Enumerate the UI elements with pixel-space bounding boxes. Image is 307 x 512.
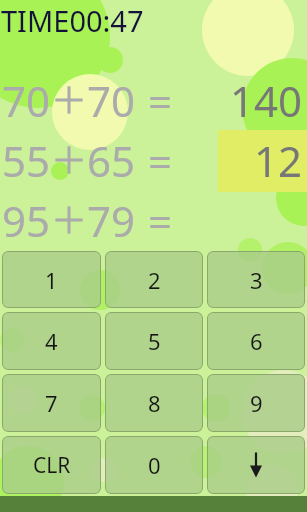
staticText: =	[148, 132, 173, 189]
staticText: 12	[254, 132, 303, 189]
button[interactable]: 6	[207, 312, 305, 370]
staticText: TIME00:47	[1, 1, 144, 40]
staticText: 55	[2, 132, 51, 189]
staticText: 140	[230, 72, 303, 129]
staticText: 7	[45, 388, 58, 418]
staticText: 70	[2, 72, 51, 129]
staticText: =	[148, 72, 173, 129]
button[interactable]: 4	[2, 312, 101, 370]
staticText: 79	[87, 192, 136, 249]
staticText: CLR	[33, 451, 71, 480]
staticText: 0	[148, 450, 161, 480]
button[interactable]: 9	[207, 374, 305, 432]
staticText: 70	[87, 72, 136, 129]
button[interactable]: 5	[105, 312, 203, 370]
staticText: 4	[45, 326, 58, 356]
staticText: 2	[148, 265, 161, 295]
button[interactable]: 3	[207, 251, 305, 308]
button[interactable]: 2	[105, 251, 203, 308]
staticText: 5	[148, 326, 161, 356]
staticText: 8	[148, 388, 161, 418]
button[interactable]: 7	[2, 374, 101, 432]
staticText: 95	[2, 192, 51, 249]
button[interactable]: CLR	[2, 436, 101, 494]
staticText: 1	[45, 265, 58, 295]
button[interactable]: 8	[105, 374, 203, 432]
button[interactable]: Enter	[207, 436, 305, 494]
staticText: 6	[250, 326, 263, 356]
staticText: 65	[87, 132, 136, 189]
button[interactable]: 0	[105, 436, 203, 494]
staticText: 9	[250, 388, 263, 418]
staticText: =	[148, 192, 173, 249]
button[interactable]: 1	[2, 251, 101, 308]
staticText: 3	[250, 265, 263, 295]
